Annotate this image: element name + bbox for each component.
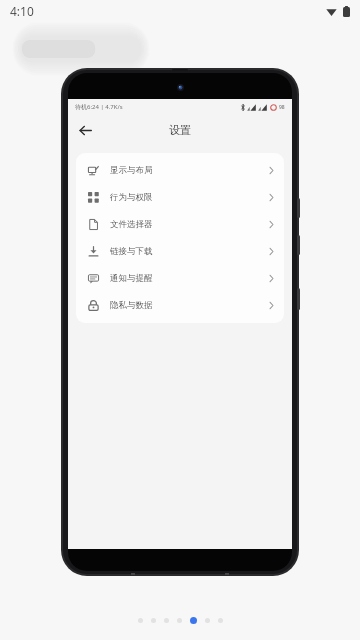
button[interactable]: Page 6 <box>205 618 210 623</box>
staticText: 待机6:24 | 4.7K/s <box>75 103 123 111</box>
button[interactable]: 链接与下载 <box>76 238 284 265</box>
staticText: 文件选择器 <box>110 219 153 230</box>
button[interactable]: 通知与提醒 <box>76 265 284 292</box>
button[interactable]: Page 1 <box>138 618 143 623</box>
staticText: 链接与下载 <box>110 246 153 257</box>
button[interactable]: 行为与权限 <box>76 184 284 211</box>
staticText: 4:10 <box>10 3 34 19</box>
button[interactable]: 隐私与数据 <box>76 292 284 319</box>
button[interactable]: Page 4 <box>177 618 182 623</box>
staticText: 通知与提醒 <box>110 273 153 284</box>
button[interactable]: Back <box>72 117 98 143</box>
button[interactable]: Page 5 <box>190 617 197 624</box>
button[interactable]: Page 3 <box>164 618 169 623</box>
staticText: 显示与布局 <box>110 165 153 176</box>
staticText: 设置 <box>169 123 191 137</box>
button[interactable]: Page 7 <box>218 618 223 623</box>
button[interactable]: Page 2 <box>151 618 156 623</box>
staticText: 隐私与数据 <box>110 300 153 311</box>
button[interactable]: 显示与布局 <box>76 157 284 184</box>
staticText: 行为与权限 <box>110 192 153 203</box>
staticText: 98 <box>279 104 285 111</box>
button[interactable]: 文件选择器 <box>76 211 284 238</box>
